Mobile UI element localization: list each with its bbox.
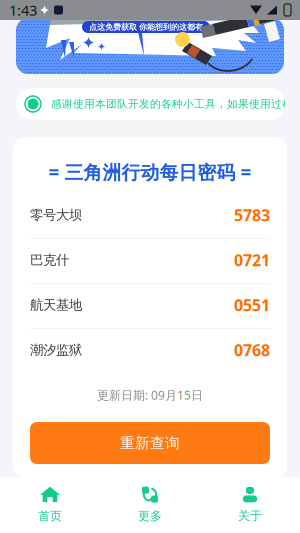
staticText: 潮汐监狱 bbox=[30, 342, 82, 358]
staticText: 感谢使用本团队开发的各种小工具，如果使用过程中 bbox=[51, 97, 300, 110]
staticText: 关于 bbox=[238, 508, 262, 523]
button[interactable]: 关于 bbox=[200, 477, 300, 533]
staticText: 重新查询 bbox=[120, 434, 180, 452]
button[interactable]: 更多 bbox=[100, 477, 200, 533]
button[interactable]: 首页 bbox=[0, 477, 100, 533]
staticText: 首页 bbox=[38, 509, 62, 523]
staticText: 5783 bbox=[234, 204, 270, 226]
staticText: 更新日期: 09月15日 bbox=[97, 387, 203, 403]
staticText: 点这免费获取 你能想到的这都有 bbox=[89, 22, 203, 32]
staticText: 0768 bbox=[234, 339, 270, 361]
staticText: 零号大坝 bbox=[30, 207, 82, 223]
staticText: 航天基地 bbox=[30, 297, 82, 313]
staticText: = 三角洲行动每日密码 = bbox=[48, 160, 251, 184]
button[interactable]: 重新查询 bbox=[30, 422, 270, 464]
staticText: 0551 bbox=[234, 294, 270, 316]
staticText: 更多 bbox=[138, 509, 162, 523]
staticText: 0721 bbox=[234, 249, 270, 271]
staticText: 1:43 bbox=[9, 0, 37, 20]
staticText: 巴克什 bbox=[30, 252, 69, 268]
